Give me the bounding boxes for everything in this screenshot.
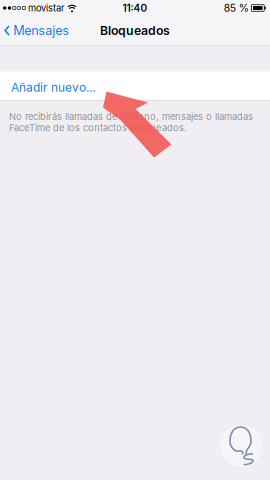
staticText: movistar bbox=[28, 2, 65, 14]
staticText: Mensajes bbox=[13, 23, 69, 38]
staticText: 85 % bbox=[224, 2, 249, 14]
staticText: Bloqueados bbox=[100, 23, 170, 38]
button[interactable]: Añadir nuevo... bbox=[0, 71, 270, 100]
staticText: Añadir nuevo... bbox=[11, 80, 95, 95]
staticText: 11:40 bbox=[122, 2, 147, 14]
staticText: No recibirás llamadas de teléfono, mensa… bbox=[9, 111, 253, 134]
button[interactable]: Mensajes bbox=[0, 16, 75, 44]
